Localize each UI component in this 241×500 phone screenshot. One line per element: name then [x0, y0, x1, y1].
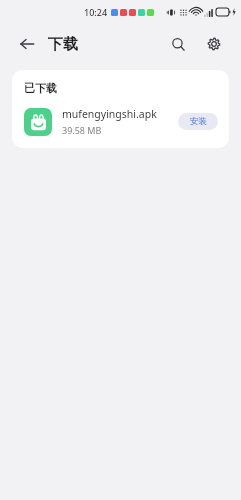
staticText: 已下载 [24, 81, 57, 95]
button[interactable]: Back [14, 31, 40, 57]
button[interactable]: Search [165, 31, 191, 57]
button[interactable]: Settings [201, 31, 227, 57]
staticText: 10:24 [84, 6, 108, 18]
staticText: 安装 [190, 116, 207, 127]
staticText: mufengyingshi.apk [62, 107, 157, 121]
button[interactable]: mufengyingshi.apk [24, 107, 218, 136]
button[interactable]: 安装 [178, 113, 218, 130]
staticText: 下载 [48, 35, 78, 54]
staticText: 39.58 MB [62, 124, 102, 136]
